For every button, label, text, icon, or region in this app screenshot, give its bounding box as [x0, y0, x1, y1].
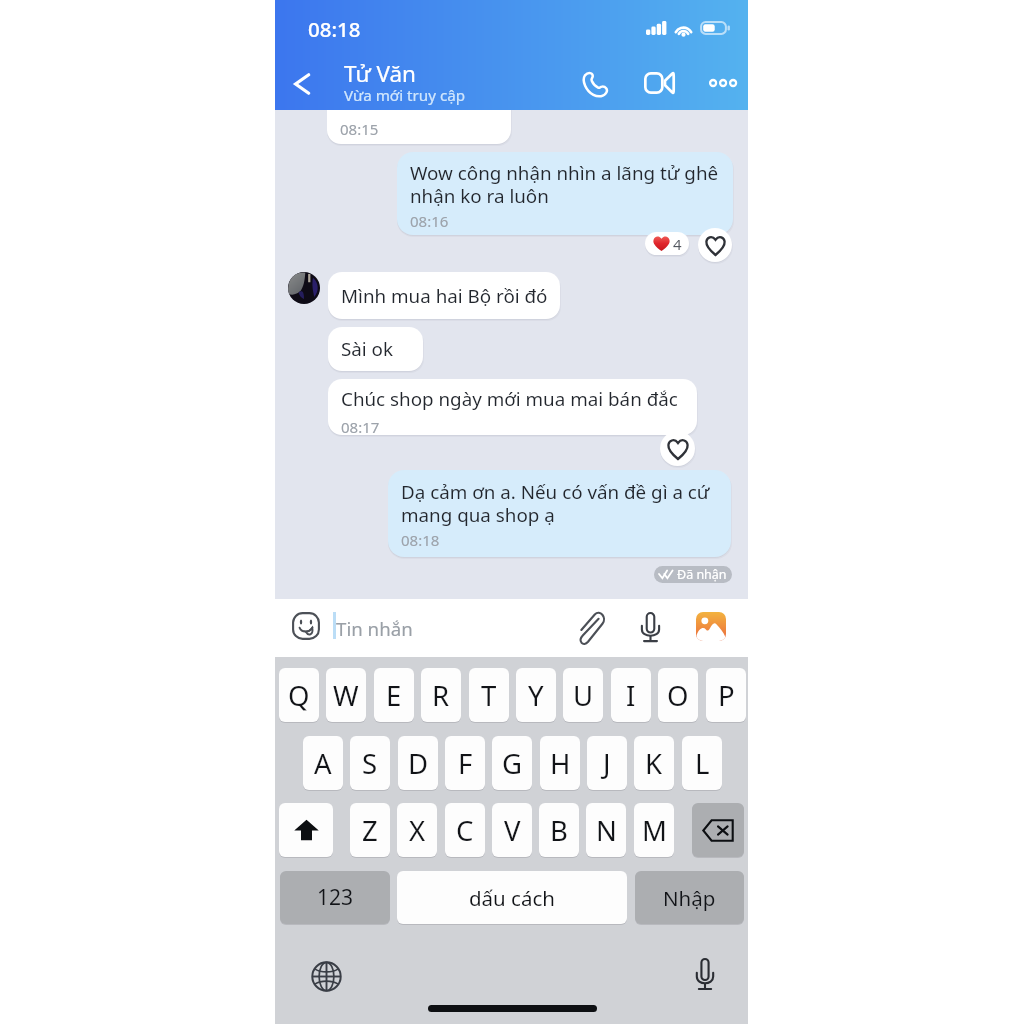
button[interactable]: Message input — [327, 605, 563, 651]
button[interactable]: V — [492, 803, 532, 857]
staticText: F — [458, 745, 473, 782]
button[interactable]: Nhập — [635, 871, 744, 924]
staticText: W — [333, 677, 359, 714]
button[interactable]: C — [445, 803, 485, 857]
button[interactable]: W — [326, 668, 366, 722]
button[interactable]: B — [539, 803, 579, 857]
staticText: B — [550, 812, 568, 849]
staticText: Vừa mới truy cập — [344, 85, 466, 106]
staticText: J — [603, 745, 611, 782]
button[interactable]: I — [611, 668, 651, 722]
staticText: 08:18 — [401, 530, 440, 550]
staticText: dấu cách — [469, 884, 555, 912]
staticText: N — [596, 812, 617, 849]
staticText: Nhập — [663, 884, 716, 912]
button[interactable]: G — [492, 736, 532, 790]
staticText: Wow công nhận nhìn a lãng tử ghê — [410, 160, 719, 186]
button[interactable]: More options — [697, 59, 748, 107]
staticText: Y — [528, 677, 544, 714]
button[interactable]: 4 — [645, 232, 689, 255]
staticText: Mình mua hai Bộ rồi đó — [341, 283, 548, 309]
staticText: P — [718, 677, 735, 714]
button[interactable]: Wow công nhận nhìn a lãng tử ghê — [397, 152, 733, 235]
button[interactable]: Backspace — [692, 803, 744, 857]
staticText: M — [642, 812, 667, 849]
staticText: Q — [288, 677, 310, 714]
button[interactable]: P — [706, 668, 746, 722]
staticText: Đã nhận — [677, 566, 727, 583]
button[interactable]: Send image — [696, 612, 726, 641]
staticText: Dạ cảm ơn a. Nếu có vấn đề gì a cứ — [401, 479, 710, 505]
button[interactable]: H — [540, 736, 580, 790]
staticText: 4 — [673, 234, 682, 254]
staticText: E — [386, 677, 402, 714]
button[interactable]: Chúc shop ngày mới mua mai bán đắc — [328, 379, 697, 435]
staticText: G — [502, 745, 523, 782]
button[interactable]: J — [587, 736, 627, 790]
staticText: Sài ok — [341, 336, 394, 362]
staticText: nhận ko ra luôn — [410, 183, 549, 209]
button[interactable]: U — [563, 668, 603, 722]
button[interactable]: Back — [278, 58, 326, 110]
staticText: L — [695, 745, 710, 782]
staticText: Tử Văn — [344, 58, 416, 89]
staticText: H — [550, 745, 571, 782]
button[interactable]: Voice message — [630, 607, 670, 647]
button[interactable]: 123 — [280, 871, 390, 924]
button[interactable]: Z — [350, 803, 390, 857]
staticText: mang qua shop ạ — [401, 502, 555, 528]
staticText: D — [408, 745, 429, 782]
button[interactable]: M — [634, 803, 674, 857]
staticText: S — [362, 745, 378, 782]
button[interactable]: Attach file — [569, 607, 609, 647]
button[interactable]: R — [421, 668, 461, 722]
staticText: Tin nhắn — [336, 616, 413, 641]
button[interactable]: Tử Văn — [341, 58, 571, 110]
staticText: A — [314, 745, 332, 782]
button[interactable]: L — [682, 736, 722, 790]
staticText: Z — [362, 812, 378, 849]
staticText: I — [626, 677, 636, 714]
button[interactable]: Sài ok — [328, 327, 423, 371]
staticText: C — [456, 812, 474, 849]
staticText: K — [645, 745, 663, 782]
button[interactable]: Shift — [279, 803, 333, 857]
staticText: Chúc shop ngày mới mua mai bán đắc — [341, 386, 678, 412]
button[interactable]: K — [634, 736, 674, 790]
button[interactable]: Like — [698, 228, 732, 262]
button[interactable]: Y — [516, 668, 556, 722]
button[interactable]: D — [398, 736, 438, 790]
button[interactable]: S — [350, 736, 390, 790]
staticText: 08:18 — [308, 15, 361, 43]
staticText: 08:17 — [341, 417, 380, 435]
button[interactable]: Call — [571, 59, 621, 107]
button[interactable]: Dictation — [685, 954, 725, 994]
staticText: V — [504, 812, 521, 849]
staticText: 08:16 — [410, 211, 449, 231]
button[interactable]: F — [445, 736, 485, 790]
button[interactable]: E — [374, 668, 414, 722]
button[interactable]: Mình mua hai Bộ rồi đó — [328, 272, 560, 319]
staticText: R — [432, 677, 450, 714]
staticText: U — [573, 677, 594, 714]
button[interactable]: Change keyboard — [306, 956, 346, 996]
button[interactable]: Emoji — [288, 608, 324, 644]
staticText: 08:15 — [340, 119, 379, 139]
button[interactable]: Like — [660, 431, 695, 466]
staticText: X — [409, 812, 426, 849]
staticText: 123 — [317, 883, 354, 912]
staticText: O — [667, 677, 689, 714]
button[interactable]: X — [397, 803, 437, 857]
button[interactable]: T — [469, 668, 509, 722]
button[interactable]: Dạ cảm ơn a. Nếu có vấn đề gì a cứ — [388, 470, 731, 557]
button[interactable]: dấu cách — [397, 871, 627, 924]
button[interactable]: O — [658, 668, 698, 722]
button[interactable]: A — [303, 736, 343, 790]
button[interactable]: N — [586, 803, 626, 857]
button[interactable]: Video call — [632, 59, 686, 107]
button[interactable]: Q — [279, 668, 319, 722]
staticText: T — [481, 677, 497, 714]
